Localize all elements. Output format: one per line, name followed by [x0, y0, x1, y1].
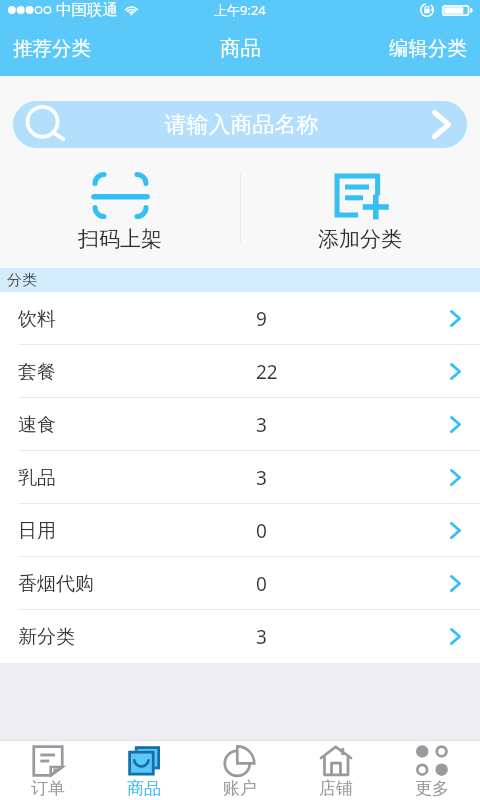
- staticText: 速食: [18, 413, 56, 437]
- button[interactable]: 香烟代购: [0, 557, 480, 610]
- staticText: 店铺: [319, 778, 353, 799]
- button[interactable]: 订单: [0, 741, 96, 800]
- button[interactable]: 新分类: [0, 610, 480, 663]
- staticText: 22: [256, 359, 278, 385]
- staticText: 日用: [18, 519, 56, 543]
- button[interactable]: 扫码上架: [0, 148, 240, 268]
- button[interactable]: 套餐: [0, 345, 480, 398]
- staticText: 扫码上架: [78, 226, 162, 252]
- staticText: 分类: [7, 271, 37, 290]
- staticText: 推荐分类: [13, 36, 91, 61]
- button[interactable]: 账户: [192, 741, 288, 800]
- staticText: 账户: [223, 778, 257, 799]
- staticText: 乳品: [18, 466, 56, 490]
- staticText: 编辑分类: [389, 36, 467, 61]
- button[interactable]: Search: [419, 101, 464, 148]
- staticText: 中国联通: [56, 0, 118, 20]
- button[interactable]: 速食: [0, 398, 480, 451]
- staticText: 9: [256, 306, 267, 332]
- button[interactable]: 商品: [96, 741, 192, 800]
- button[interactable]: 日用: [0, 504, 480, 557]
- staticText: 订单: [31, 778, 65, 799]
- button[interactable]: 饮料: [0, 292, 480, 345]
- staticText: 更多: [415, 778, 449, 799]
- staticText: 3: [256, 465, 267, 491]
- staticText: 套餐: [18, 360, 56, 384]
- staticText: 新分类: [18, 625, 75, 649]
- staticText: 3: [256, 412, 267, 438]
- staticText: 饮料: [18, 307, 56, 331]
- button[interactable]: 请输入商品名称: [13, 101, 467, 148]
- button[interactable]: 更多: [384, 741, 480, 800]
- staticText: 请输入商品名称: [64, 111, 419, 139]
- button[interactable]: 店铺: [288, 741, 384, 800]
- staticText: 3: [256, 624, 267, 650]
- staticText: 0: [256, 518, 267, 544]
- staticText: 香烟代购: [18, 572, 94, 596]
- button[interactable]: 添加分类: [240, 148, 480, 268]
- staticText: 添加分类: [318, 226, 402, 252]
- button[interactable]: 乳品: [0, 451, 480, 504]
- staticText: 商品: [220, 35, 261, 61]
- button[interactable]: 推荐分类: [0, 26, 104, 71]
- staticText: 上午9:24: [214, 1, 266, 19]
- button[interactable]: 编辑分类: [376, 26, 480, 71]
- staticText: 商品: [127, 778, 161, 799]
- staticText: 0: [256, 571, 267, 597]
